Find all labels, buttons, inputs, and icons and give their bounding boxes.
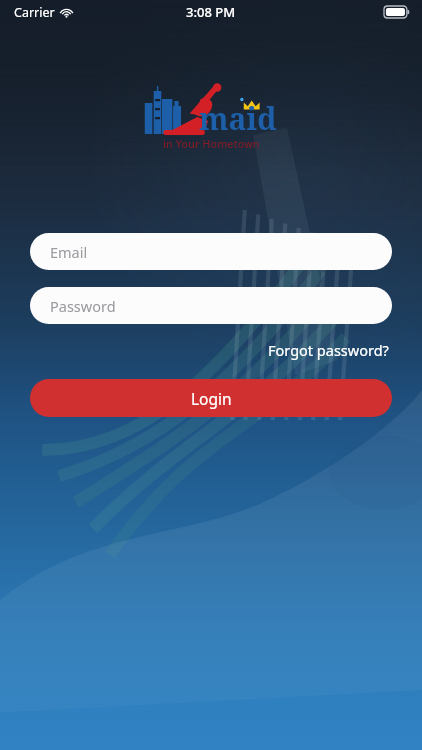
button[interactable]: Login: [30, 379, 392, 417]
staticText: Email: [50, 242, 88, 262]
staticText: in Your Hometown: [163, 137, 260, 151]
button[interactable]: Forgot password?: [265, 337, 392, 363]
staticText: Carrier: [14, 4, 55, 21]
button[interactable]: Password: [30, 287, 392, 324]
staticText: Forgot password?: [268, 340, 389, 360]
staticText: 3:08 PM: [186, 3, 236, 21]
button[interactable]: Email: [30, 233, 392, 270]
staticText: Password: [50, 296, 116, 316]
staticText: maid: [199, 98, 277, 139]
staticText: Login: [191, 388, 232, 409]
